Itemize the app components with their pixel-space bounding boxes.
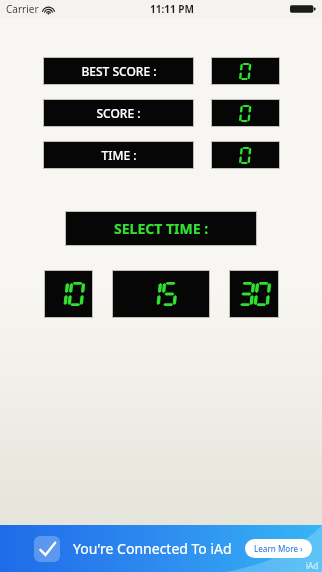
button[interactable]: Select 15 seconds	[112, 270, 210, 318]
button[interactable]: Select 30 seconds	[229, 270, 279, 318]
button[interactable]: BEST SCORE : value 0	[211, 57, 280, 85]
button[interactable]: TIME :	[43, 141, 194, 169]
staticText: iAd	[306, 560, 319, 571]
staticText: TIME :	[101, 147, 137, 163]
button[interactable]: Select 10 seconds	[44, 270, 93, 318]
button[interactable]: SCORE :	[43, 99, 194, 127]
button[interactable]: Learn More ›	[254, 543, 303, 554]
button[interactable]: SCORE : value 0	[211, 99, 280, 127]
button[interactable]: BEST SCORE :	[43, 57, 194, 85]
staticText: SCORE :	[96, 105, 141, 121]
staticText: Learn More ›	[254, 543, 303, 554]
staticText: 11:11 PM	[150, 2, 194, 16]
button[interactable]: TIME : value 0	[211, 141, 280, 169]
button[interactable]: You're Connected To iAd advertisement	[0, 525, 322, 572]
staticText: You're Connected To iAd	[73, 539, 232, 558]
staticText: BEST SCORE :	[81, 63, 157, 79]
staticText: SELECT TIME :	[114, 219, 209, 238]
button[interactable]: SELECT TIME :	[65, 211, 257, 246]
staticText: Carrier	[6, 2, 39, 16]
